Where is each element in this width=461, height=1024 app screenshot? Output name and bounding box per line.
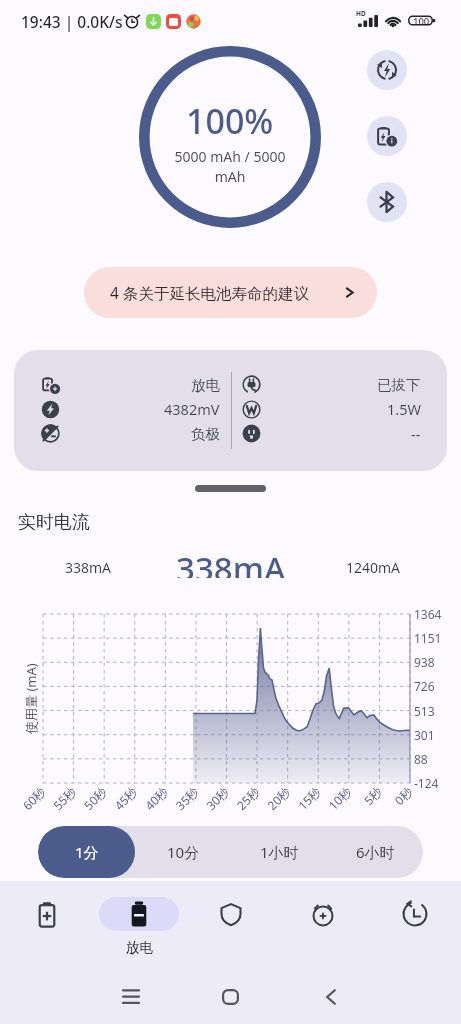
button[interactable]: Charging [0,881,93,972]
staticText: HD [356,9,366,18]
button[interactable]: History [369,881,461,972]
staticText: 4 条关于延长电池寿命的建议 [110,282,309,303]
staticText: 1分 [75,842,99,862]
staticText: 6小时 [356,842,395,862]
staticText: 4382mV [164,399,220,419]
staticText: 338mA [176,546,286,578]
button[interactable]: Alarm [277,881,369,972]
staticText: -- [411,424,421,444]
button[interactable]: Discharging [93,881,185,972]
button[interactable]: Recent apps [112,978,149,1015]
staticText: 100% [186,98,274,144]
staticText: 1小时 [260,842,299,862]
staticText: 负极 [191,425,220,443]
staticText: 100 [413,15,430,28]
staticText: 放电 [126,939,153,956]
button[interactable]: 1分 [38,826,135,878]
button[interactable]: Battery health [185,881,277,972]
button[interactable]: Battery info [367,116,407,156]
button[interactable]: Home [212,978,249,1015]
button[interactable]: 10分 [135,826,231,878]
staticText: 已拔下 [377,376,421,394]
staticText: 5000 mAh / 5000 mAh [174,147,286,187]
staticText: 实时电流 [18,511,90,534]
button[interactable]: 4 条关于延长电池寿命的建议 [84,267,377,318]
button[interactable]: Bluetooth [367,182,407,222]
button[interactable]: Back [312,978,349,1015]
button[interactable]: Charging cycles [367,50,407,90]
button[interactable]: 6小时 [327,826,423,878]
staticText: 1240mA [346,558,401,577]
staticText: 19:43 | 0.0K/s [21,11,123,32]
button[interactable]: 1小时 [231,826,327,878]
staticText: 放电 [191,376,220,394]
staticText: 10分 [167,842,200,862]
staticText: 1.5W [387,399,421,419]
staticText: 338mA [65,558,112,577]
